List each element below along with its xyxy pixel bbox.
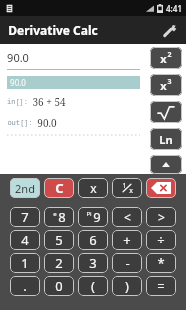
button[interactable]: 1 [10,253,40,273]
button[interactable]: x [78,178,108,198]
staticText: Pi [86,210,92,218]
staticText: 9 [93,208,101,226]
button[interactable]: More [150,155,182,174]
button[interactable]: Pi [78,207,108,227]
staticText: in[]: [7,97,28,107]
button[interactable]: C [44,178,74,198]
button[interactable]: ) [112,276,142,296]
staticText: ( [91,277,95,295]
staticText: out[]: [7,118,33,128]
button[interactable]: e [44,207,74,227]
staticText: 90.0 [37,116,57,130]
staticText: 4 [21,231,29,249]
staticText: > [158,209,165,225]
staticText: 1 [122,181,127,191]
staticText: 6 [89,231,97,249]
staticText: ÷ [157,231,165,249]
staticText: x [160,51,167,66]
staticText: . [23,277,27,295]
staticText: 2 [55,254,63,272]
button[interactable]: 2 [44,253,74,273]
staticText: + [123,231,131,249]
staticText: 5 [55,231,63,249]
staticText: - [125,254,130,272]
button[interactable]: * [146,253,176,273]
staticText: 2nd [15,181,35,196]
button[interactable]: < [112,207,142,227]
staticText: 4:41 [166,3,182,14]
button[interactable]: - [112,253,142,273]
button[interactable]: 0 [44,276,74,296]
staticText: 8 [58,208,66,226]
button[interactable]: 90.0 [7,76,140,89]
staticText: 3 [89,254,97,272]
button[interactable]: 7 [10,207,40,227]
staticText: x [160,78,167,93]
button[interactable]: . [10,276,40,296]
staticText: = [157,277,165,295]
button[interactable]: 6 [78,230,108,250]
staticText: < [124,209,131,225]
staticText: 2 [167,50,172,60]
staticText: Derivative Calc [8,22,98,38]
staticText: 0 [55,277,63,295]
staticText: 36 + 54 [32,95,66,109]
staticText: ) [125,277,129,295]
staticText: 7 [21,208,29,226]
button[interactable]: Backspace [146,178,176,198]
button[interactable]: ÷ [146,230,176,250]
button[interactable]: 4 [10,230,40,250]
button[interactable]: > [146,207,176,227]
button[interactable]: x cubed [150,74,182,96]
staticText: 90.0 [7,50,29,65]
button[interactable]: 2nd [10,178,40,198]
staticText: C [55,179,64,197]
button[interactable]: Square root [150,101,182,123]
staticText: x [90,180,97,196]
button[interactable]: 3 [78,253,108,273]
button[interactable]: 5 [44,230,74,250]
staticText: e [53,210,57,218]
button[interactable]: + [112,230,142,250]
button[interactable]: Settings [158,19,180,41]
staticText: * [157,254,165,272]
button[interactable]: = [146,276,176,296]
staticText: 3 [167,77,172,87]
button[interactable]: ( [78,276,108,296]
staticText: x [129,186,133,196]
button[interactable]: One over x [112,178,142,198]
staticText: 1 [21,254,29,272]
staticText: 90.0 [10,77,26,88]
button[interactable]: x squared [150,47,182,69]
button[interactable]: Ln [150,128,182,150]
staticText: Ln [159,132,173,147]
